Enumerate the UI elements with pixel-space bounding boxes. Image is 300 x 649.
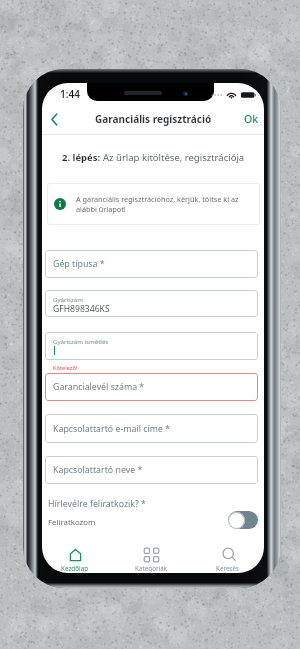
staticText: Gyáriszám xyxy=(53,295,83,303)
staticText: Az űrlap kitöltése, regisztrációja xyxy=(103,151,245,164)
button[interactable]: Vissza xyxy=(43,108,65,130)
staticText: Kezdőlap xyxy=(61,564,89,572)
button[interactable]: Gép típusa * xyxy=(45,250,258,278)
button[interactable]: Kezdőlap xyxy=(46,541,104,572)
staticText: Feliratkozom xyxy=(48,517,96,528)
staticText: Kategóriák xyxy=(135,564,168,572)
button[interactable]: Gyáriszám ismétlés xyxy=(45,332,258,360)
staticText: Ok xyxy=(244,112,259,126)
staticText: Gép típusa * xyxy=(53,258,105,270)
button[interactable]: Keresés xyxy=(199,541,257,572)
staticText: Keresés xyxy=(216,564,240,572)
staticText: Kötelező! xyxy=(53,364,78,372)
staticText: Gyáriszám ismétlés xyxy=(53,337,109,345)
button[interactable]: Gyáriszám xyxy=(45,290,258,317)
staticText: Kapcsolattartó e-mail címe * xyxy=(53,423,171,435)
staticText: A garanciális regisztrációhoz, kérjük, t… xyxy=(76,194,239,214)
staticText: 2. lépés: xyxy=(62,151,103,164)
button[interactable]: Ok xyxy=(238,107,264,131)
button[interactable]: Kapcsolattartó e-mail címe * xyxy=(45,414,258,443)
staticText: 1:44 xyxy=(60,87,80,101)
button[interactable]: Garancialevél száma * xyxy=(45,373,258,401)
staticText: GFH898346KS xyxy=(53,303,110,315)
staticText: Hírlevélre feliratkozik? * xyxy=(48,498,146,510)
button[interactable]: Feliratkozom kapcsoló xyxy=(228,511,258,529)
staticText: Garanciális regisztráció xyxy=(95,112,212,126)
staticText: Kapcsolattartó neve * xyxy=(53,464,143,476)
button[interactable]: Kategóriák xyxy=(122,541,180,572)
button[interactable]: Kapcsolattartó neve * xyxy=(45,456,258,484)
staticText: Garancialevél száma * xyxy=(53,381,145,393)
